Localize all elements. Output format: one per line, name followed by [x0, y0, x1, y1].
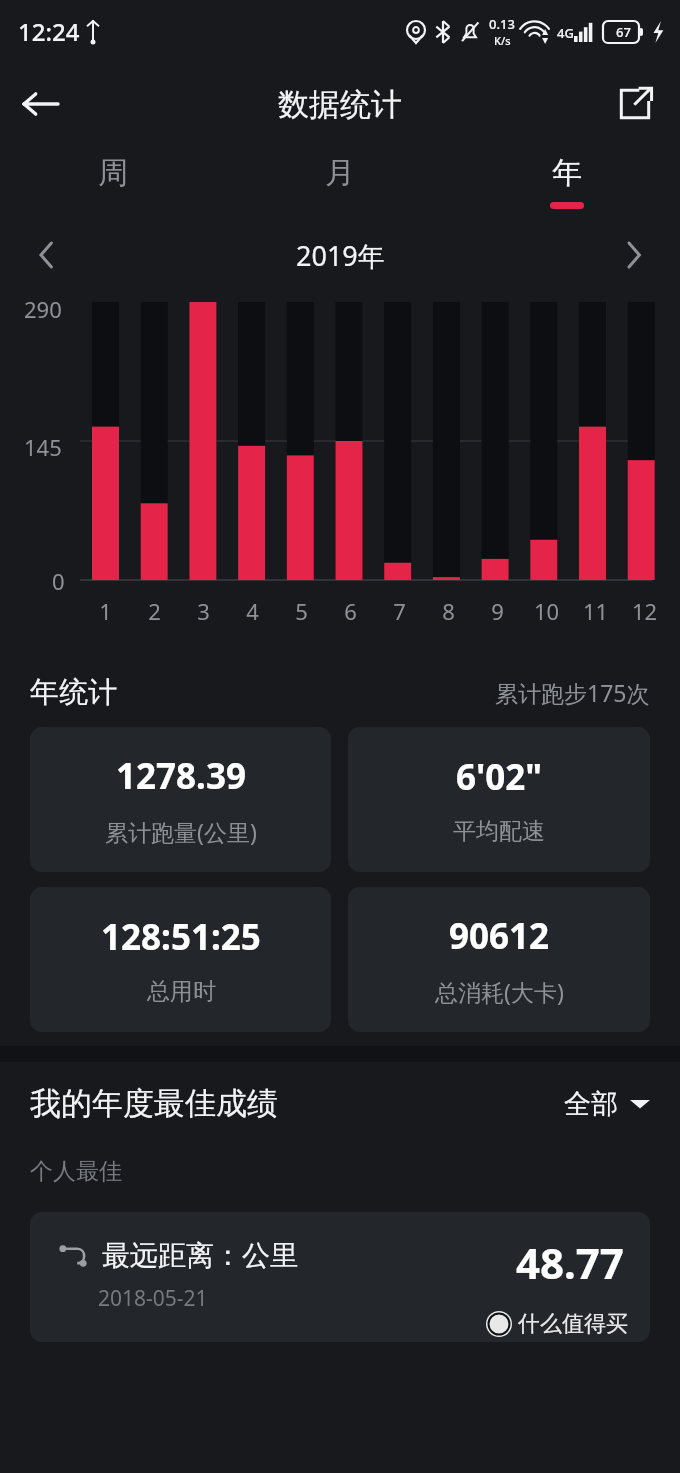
staticText: 9: [484, 596, 511, 626]
staticText: 5: [288, 596, 315, 626]
staticText: 个人最佳: [30, 1157, 122, 1186]
staticText: 总消耗(大卡): [435, 976, 564, 1007]
button[interactable]: 最远距离：公里: [30, 1212, 650, 1342]
button[interactable]: Next year: [606, 227, 662, 283]
staticText: 3: [190, 596, 217, 626]
staticText: 2018-05-21: [98, 1284, 208, 1313]
button[interactable]: 128:51:25: [30, 887, 331, 1032]
staticText: 67: [616, 23, 631, 41]
staticText: 平均配速: [453, 817, 545, 846]
button[interactable]: 6'02": [348, 727, 650, 872]
staticText: K/s: [494, 33, 511, 48]
staticText: 8: [435, 596, 462, 626]
staticText: 1: [92, 596, 119, 626]
staticText: 145: [24, 432, 62, 462]
staticText: 6'02": [456, 753, 543, 801]
staticText: 0: [52, 566, 65, 596]
button[interactable]: 1278.39: [30, 727, 331, 872]
staticText: 48.77: [516, 1234, 624, 1291]
button[interactable]: Share: [604, 73, 666, 135]
staticText: 10: [533, 596, 560, 626]
button[interactable]: 周: [0, 146, 226, 222]
button[interactable]: 90612: [348, 887, 650, 1032]
button[interactable]: Back: [10, 73, 72, 135]
staticText: 最远距离：公里: [102, 1238, 298, 1273]
staticText: 累计跑量(公里): [105, 816, 257, 847]
staticText: 128:51:25: [101, 913, 261, 961]
staticText: 我的年度最佳成绩: [30, 1084, 278, 1123]
button[interactable]: 月: [226, 146, 453, 222]
staticText: 全部: [564, 1087, 618, 1121]
staticText: 90612: [449, 912, 550, 960]
staticText: 1278.39: [116, 752, 246, 800]
staticText: 总用时: [147, 977, 216, 1006]
staticText: 年: [552, 154, 582, 192]
staticText: 11: [582, 596, 609, 626]
staticText: 周: [98, 154, 128, 192]
staticText: 什么值得买: [518, 1310, 628, 1338]
staticText: 2019年: [296, 237, 385, 274]
button[interactable]: Previous year: [18, 227, 74, 283]
staticText: 12: [631, 596, 658, 626]
staticText: 累计跑步175次: [495, 677, 650, 708]
button[interactable]: 全部: [564, 1087, 650, 1121]
staticText: 12:24: [18, 15, 80, 48]
button[interactable]: 年: [453, 146, 680, 222]
staticText: 2: [141, 596, 168, 626]
staticText: 4G: [557, 24, 574, 42]
staticText: 290: [24, 294, 62, 324]
staticText: 年统计: [30, 674, 117, 711]
staticText: 6: [337, 596, 364, 626]
staticText: 7: [386, 596, 413, 626]
staticText: 数据统计: [278, 85, 402, 124]
staticText: 4: [239, 596, 266, 626]
staticText: 月: [325, 154, 355, 192]
staticText: 0.13: [489, 15, 515, 33]
